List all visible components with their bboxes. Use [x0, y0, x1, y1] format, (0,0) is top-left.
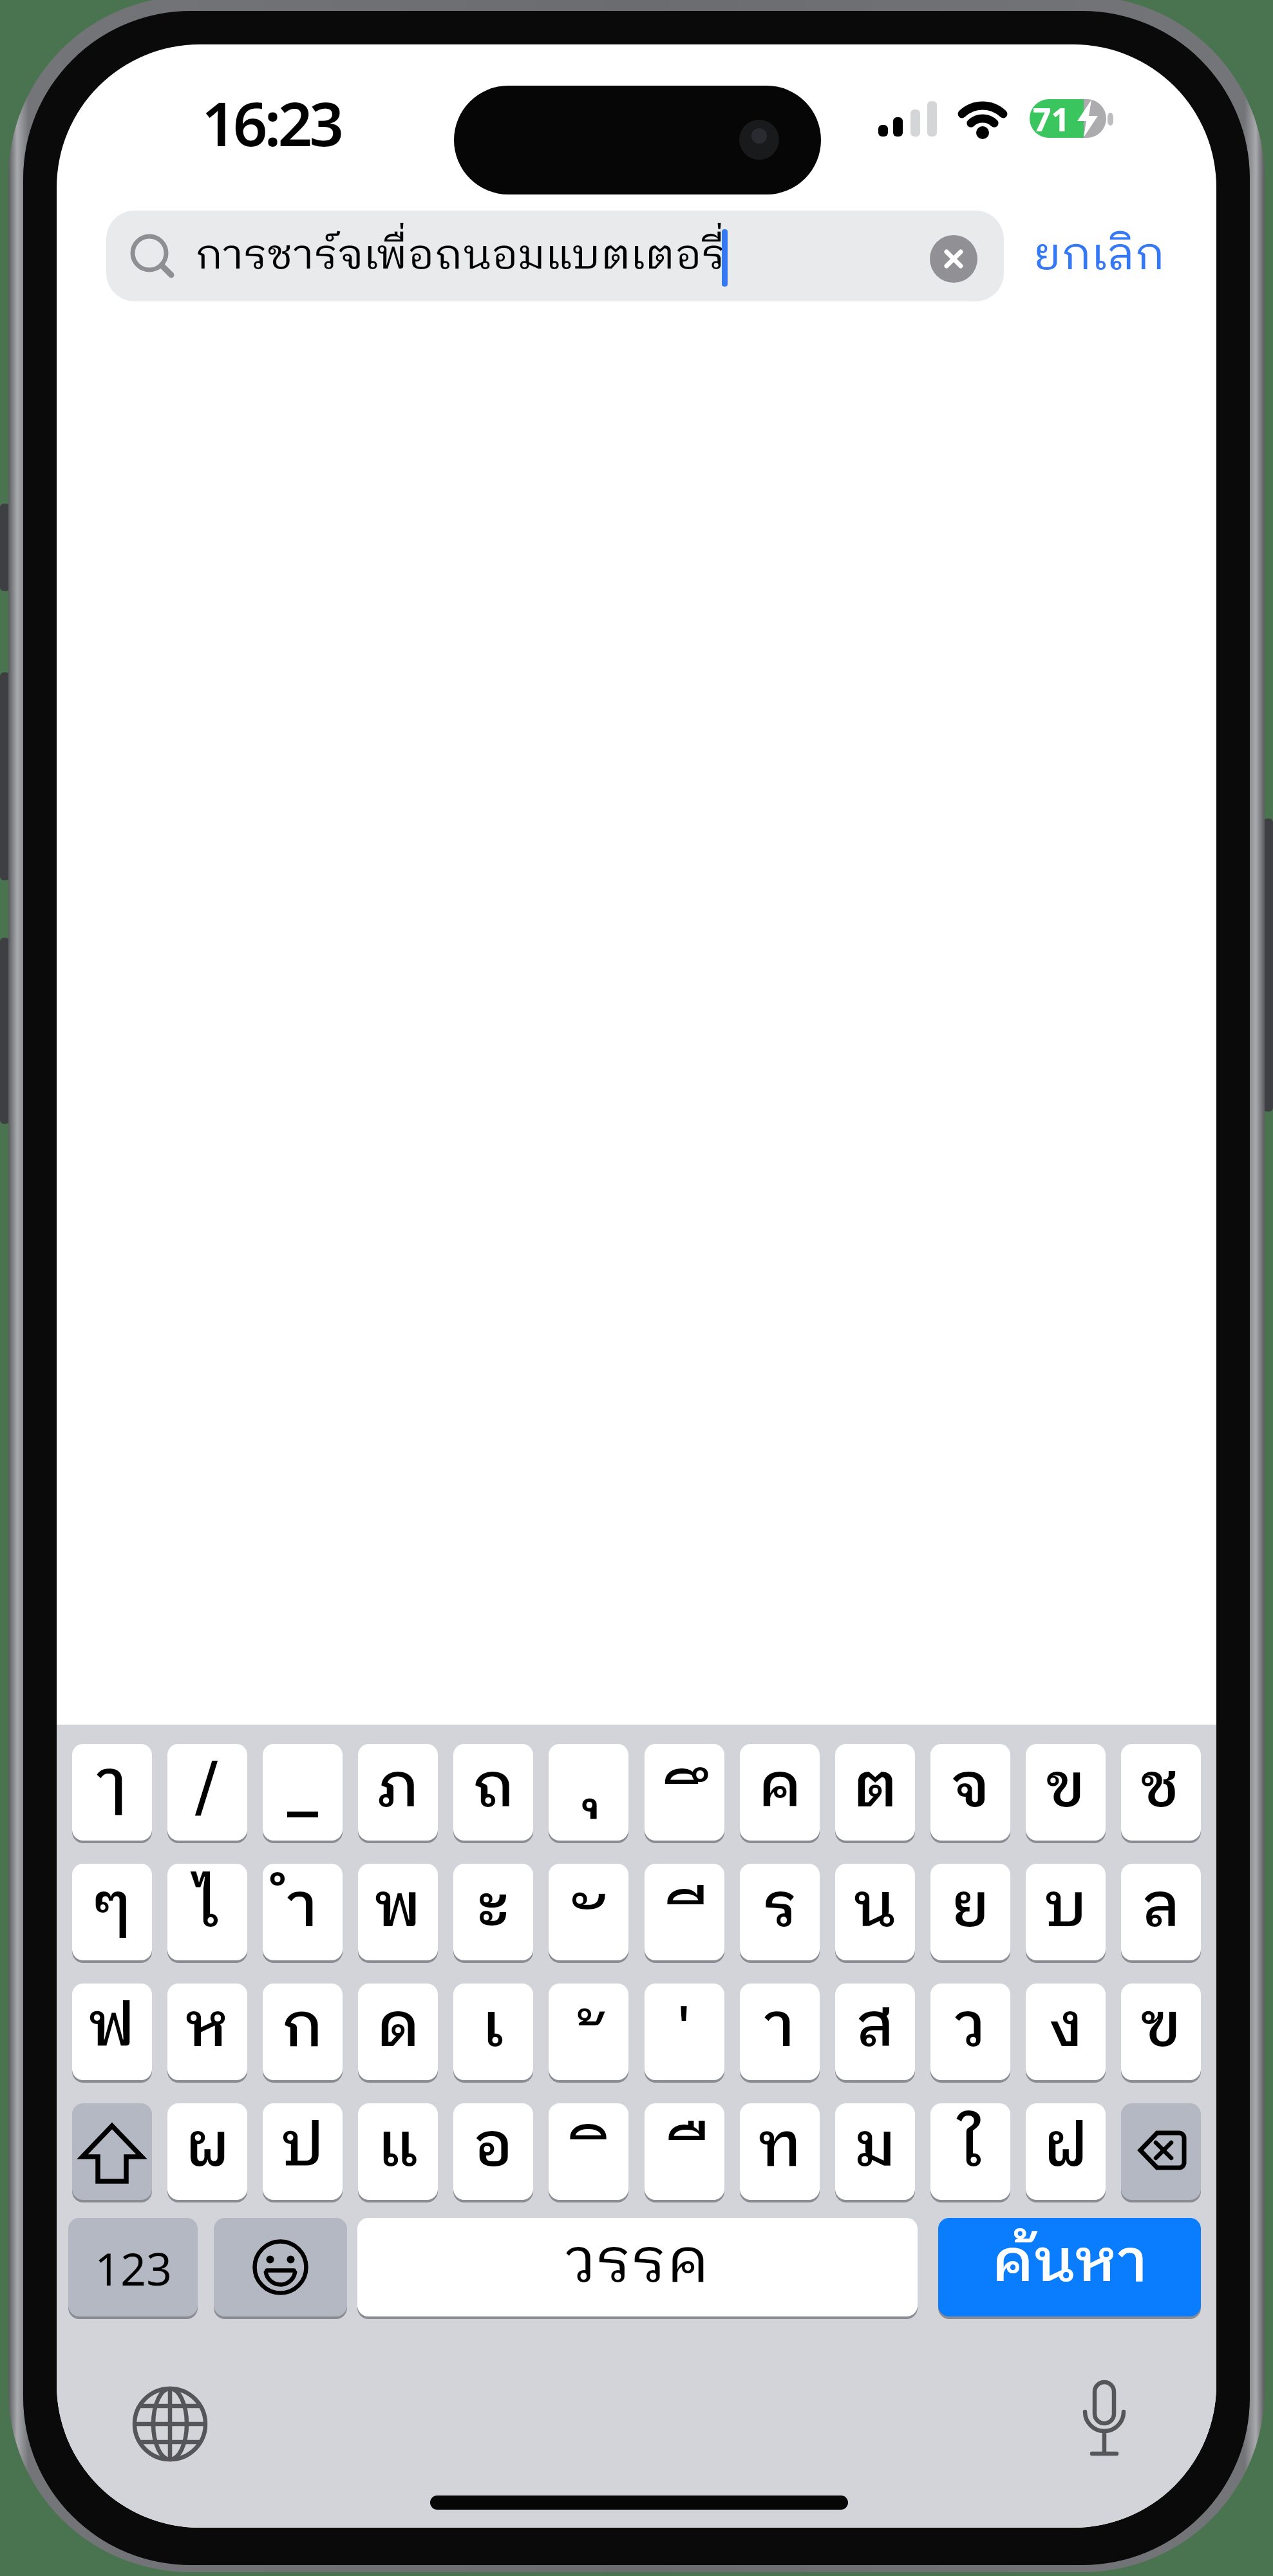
button[interactable]: จ — [930, 1744, 1010, 1841]
staticText: ่ — [670, 1984, 690, 2080]
staticText: 16:23 — [202, 82, 341, 164]
staticText: ภ — [376, 1744, 420, 1839]
button[interactable]: ยกเลิก — [1032, 211, 1167, 301]
button[interactable] — [1067, 2377, 1142, 2458]
button[interactable]: บ — [1026, 1864, 1106, 1960]
staticText: ล — [1142, 1864, 1181, 1959]
staticText: ค้นหา — [992, 2218, 1148, 2313]
button[interactable]: ะ — [453, 1864, 533, 1960]
button[interactable]: ห — [167, 1984, 247, 2080]
staticText: ั — [589, 1871, 608, 1960]
button[interactable]: ท — [740, 2103, 820, 2200]
staticText: ะ — [476, 1864, 510, 1959]
button[interactable] — [72, 2103, 152, 2200]
staticText: ว — [954, 1984, 986, 2079]
button[interactable]: ๆ — [72, 1864, 152, 1960]
staticText: ยกเลิก — [1033, 219, 1165, 294]
button[interactable]: ว — [930, 1984, 1010, 2080]
button[interactable]: วรรค — [357, 2218, 918, 2316]
button[interactable]: ผ — [167, 2103, 247, 2200]
staticText: ิ — [590, 2103, 609, 2200]
button[interactable]: ร — [740, 1864, 820, 1960]
button[interactable]: เ — [453, 1984, 533, 2080]
button[interactable]: ง — [1026, 1984, 1106, 2080]
button[interactable]: ภ — [358, 1744, 438, 1841]
staticText: ๆ — [93, 1864, 132, 1959]
staticText: _ — [285, 1744, 320, 1839]
staticText: ต — [853, 1744, 898, 1839]
staticText: า — [764, 1984, 796, 2079]
button[interactable]: ส — [835, 1984, 915, 2080]
button[interactable]: ึ — [645, 1744, 724, 1841]
staticText: / — [194, 1744, 221, 1839]
button[interactable]: _ — [263, 1744, 343, 1841]
button[interactable]: / — [167, 1744, 247, 1841]
button[interactable]: ค้นหา — [938, 2218, 1201, 2316]
staticText: บ — [1044, 1864, 1088, 1959]
staticText: ใ — [958, 2103, 983, 2199]
button[interactable]: ฝ — [1026, 2103, 1106, 2200]
button[interactable]: 123 — [68, 2218, 198, 2316]
button[interactable] — [1121, 2103, 1201, 2200]
staticText: การชาร์จเพื่อถนอมแบตเตอรี่ — [195, 222, 726, 290]
button[interactable]: ุ — [549, 1744, 628, 1841]
staticText: 123 — [95, 2237, 173, 2298]
staticText: ข — [1046, 1744, 1086, 1839]
staticText: ึ — [692, 1747, 711, 1841]
button[interactable]: ำ — [263, 1864, 343, 1960]
staticText: น — [853, 1864, 897, 1959]
button[interactable]: ิ — [549, 2103, 628, 2200]
button[interactable]: น — [835, 1864, 915, 1960]
button[interactable] — [106, 211, 1004, 301]
staticText: จ — [951, 1744, 990, 1839]
button[interactable]: ๅ — [72, 1744, 152, 1841]
button[interactable]: พ — [358, 1864, 438, 1960]
button[interactable]: ข — [1026, 1744, 1106, 1841]
staticText: ้ — [589, 1988, 608, 2080]
button[interactable]: ด — [358, 1984, 438, 2080]
button[interactable]: ี — [645, 1864, 724, 1960]
button[interactable]: ั — [549, 1864, 628, 1960]
staticText: เ — [482, 1984, 504, 2079]
button[interactable]: ถ — [453, 1744, 533, 1841]
button[interactable]: า — [740, 1984, 820, 2080]
button[interactable]: ต — [835, 1744, 915, 1841]
staticText: แ — [378, 2103, 419, 2199]
staticText: ร — [762, 1864, 798, 1959]
staticText: ก — [281, 1984, 324, 2079]
button[interactable] — [133, 2387, 207, 2461]
staticText: ง — [1048, 1984, 1084, 2079]
button[interactable]: ก — [263, 1984, 343, 2080]
button[interactable]: ค — [740, 1744, 820, 1841]
staticText: ด — [376, 1984, 420, 2079]
button[interactable]: ช — [1121, 1744, 1201, 1841]
button[interactable]: ฟ — [72, 1984, 152, 2080]
staticText: ม — [854, 2103, 896, 2199]
button[interactable] — [214, 2218, 347, 2316]
button[interactable] — [430, 2489, 848, 2516]
button[interactable]: ใ — [930, 2103, 1010, 2200]
button[interactable]: ฃ — [1121, 1984, 1201, 2080]
staticText: ๅ — [96, 1744, 128, 1836]
staticText: วรรค — [565, 2218, 710, 2315]
staticText: ช — [1140, 1744, 1182, 1839]
button[interactable]: ป — [263, 2103, 343, 2200]
button[interactable]: ย — [930, 1864, 1010, 1960]
button[interactable]: อ — [453, 2103, 533, 2200]
staticText: ื — [688, 2103, 708, 2200]
staticText: ป — [281, 2103, 325, 2199]
button[interactable]: ่ — [645, 1984, 724, 2080]
staticText: ย — [951, 1864, 990, 1959]
button[interactable] — [930, 235, 977, 283]
staticText: ถ — [472, 1744, 515, 1839]
button[interactable]: แ — [358, 2103, 438, 2200]
staticText: ุ — [580, 1744, 599, 1833]
staticText: 71 — [1033, 97, 1070, 141]
button[interactable]: ม — [835, 2103, 915, 2200]
button[interactable]: ล — [1121, 1864, 1201, 1960]
staticText: ี — [687, 1867, 706, 1960]
staticText: ำ — [287, 1864, 319, 1959]
button[interactable]: ้ — [549, 1984, 628, 2080]
button[interactable]: ไ — [167, 1864, 247, 1960]
button[interactable]: ื — [645, 2103, 724, 2200]
